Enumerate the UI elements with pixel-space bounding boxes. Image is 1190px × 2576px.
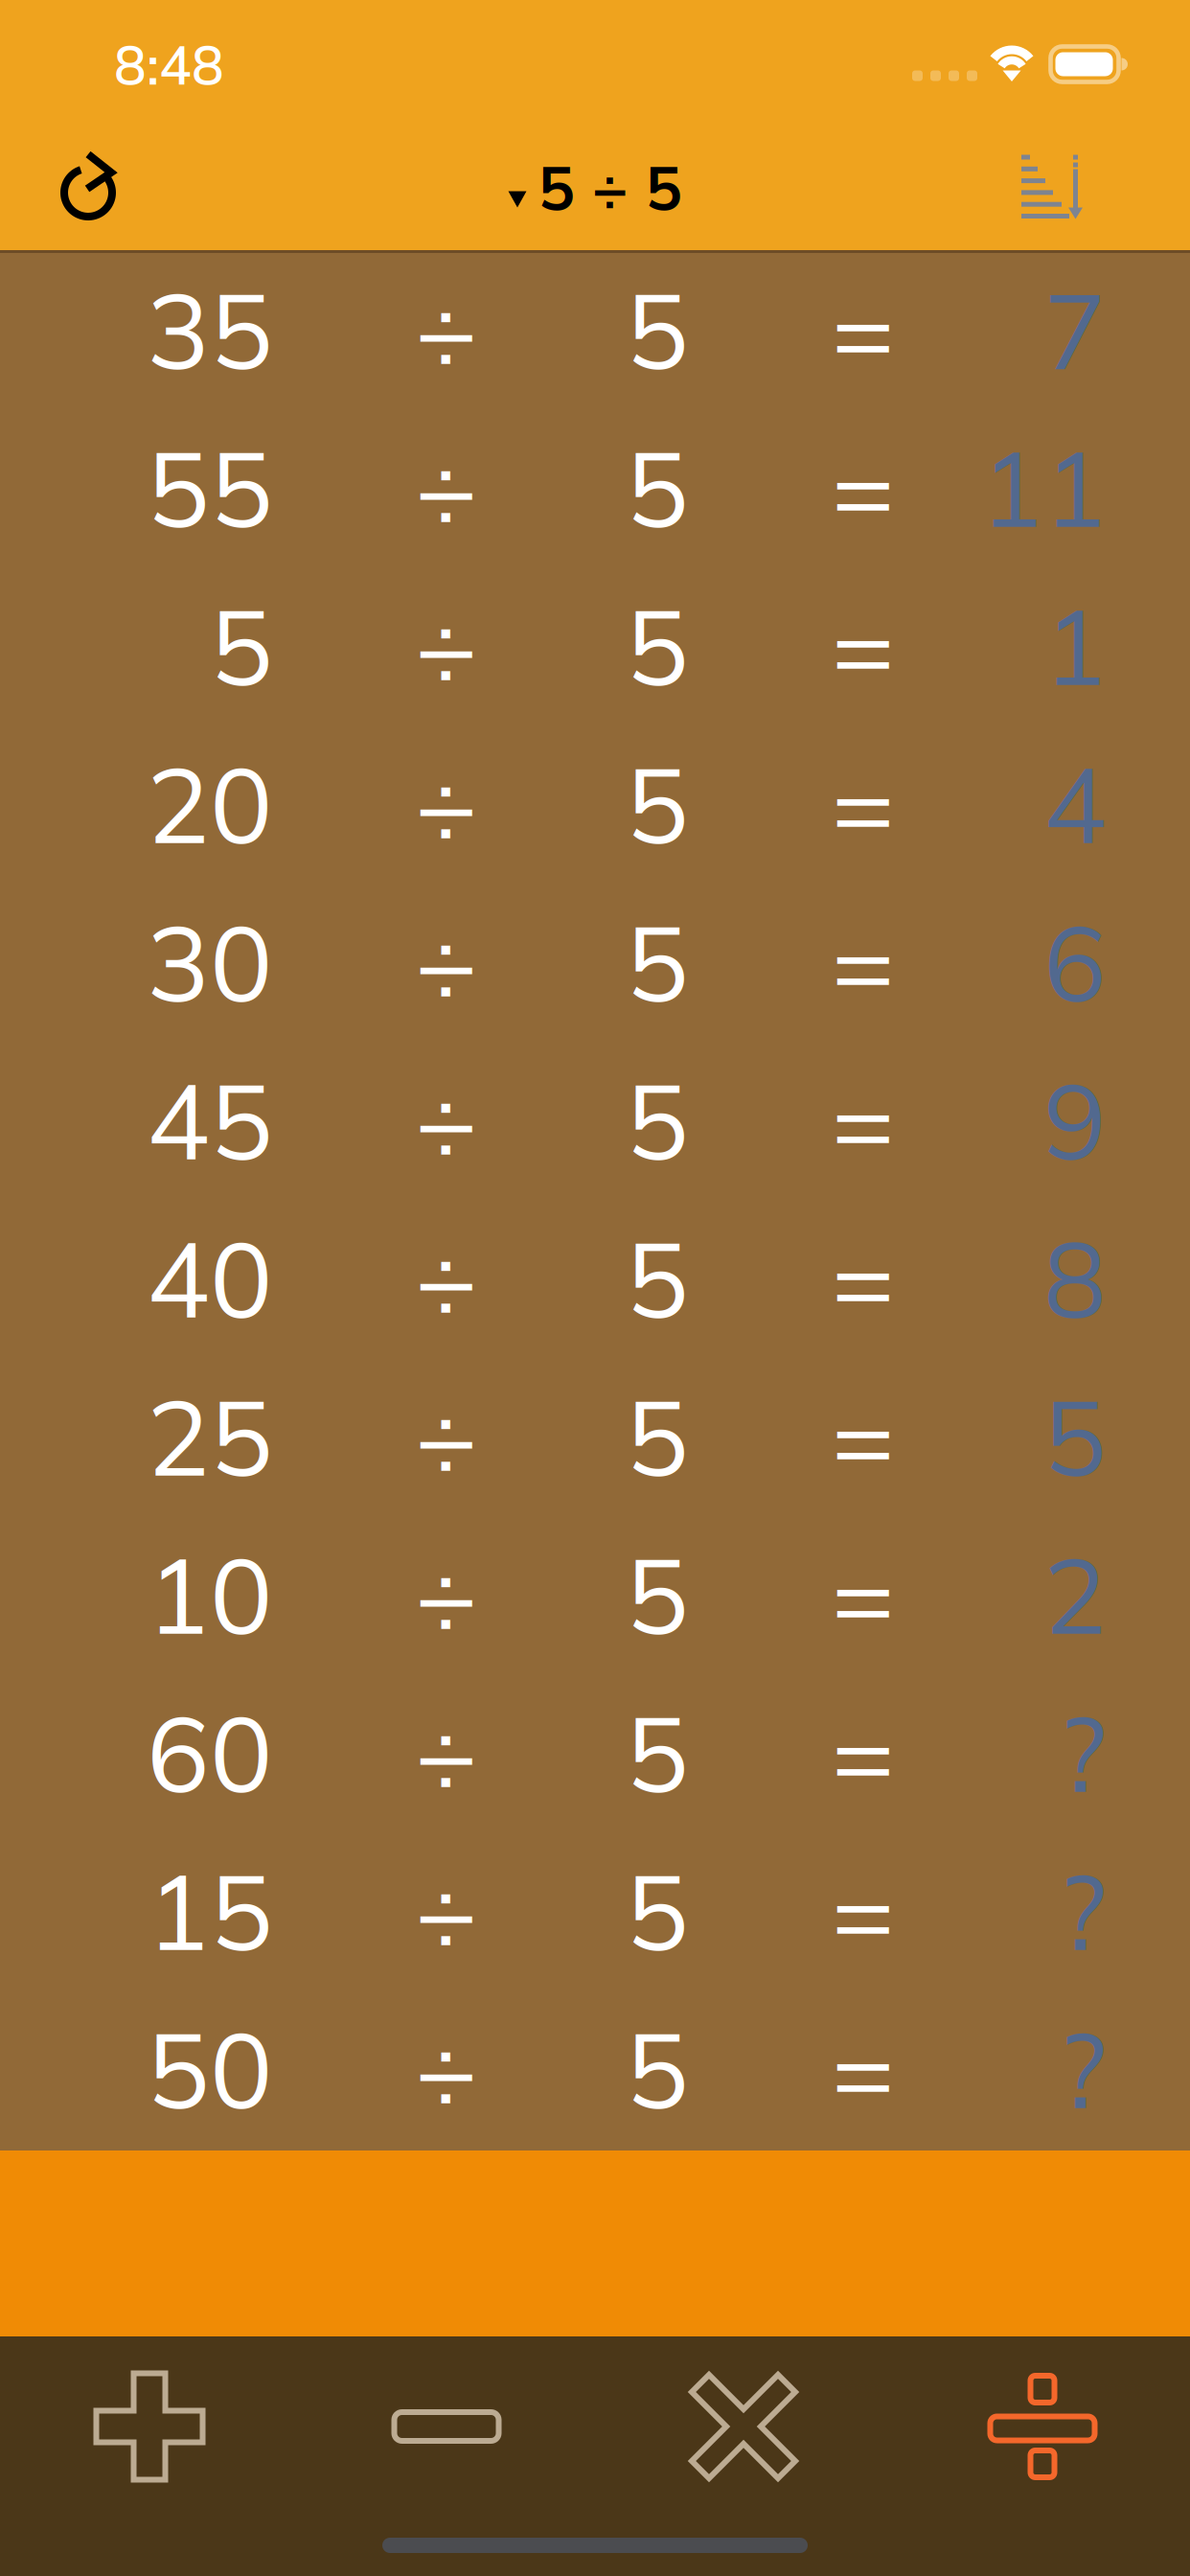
staticText: 5 (626, 1845, 689, 1976)
staticText: ÷ (415, 422, 478, 553)
staticText: = (832, 422, 895, 553)
staticText: 8:48 (114, 31, 224, 98)
staticText: ? (1060, 1845, 1107, 1976)
staticText: 5 (626, 1212, 689, 1344)
staticText: = (832, 738, 895, 869)
staticText: 25 (147, 1370, 273, 1502)
staticText: ? (1060, 1687, 1107, 1818)
staticText: 5 (626, 2003, 689, 2134)
staticText: = (832, 1054, 895, 1186)
button[interactable]: Division (908, 2340, 1177, 2513)
button[interactable]: Addition (15, 2340, 284, 2513)
staticText: ÷ (415, 1845, 478, 1976)
staticText: 5 (626, 1687, 689, 1818)
staticText: 5 (626, 1370, 689, 1502)
button[interactable]: Sort order (995, 124, 1110, 250)
button[interactable]: Multiplication (609, 2340, 878, 2513)
staticText: 1 (1043, 580, 1107, 711)
staticText: 35 (147, 263, 273, 395)
staticText: 20 (147, 738, 273, 869)
staticText: 50 (147, 2003, 273, 2134)
staticText: 5 (626, 1528, 689, 1660)
button[interactable]: Subtraction (312, 2340, 581, 2513)
button[interactable]: 5 ÷ 5 (423, 124, 767, 250)
staticText: 55 (147, 422, 273, 553)
staticText: ÷ (415, 738, 478, 869)
staticText: = (832, 263, 895, 395)
staticText: 5 (626, 738, 689, 869)
staticText: 10 (147, 1528, 273, 1660)
staticText: 5 (626, 896, 689, 1027)
staticText: = (832, 1845, 895, 1976)
staticText: = (832, 1528, 895, 1660)
staticText: ÷ (415, 580, 478, 711)
staticText: 30 (147, 896, 273, 1027)
staticText: ÷ (415, 263, 478, 395)
staticText: 7 (1043, 263, 1107, 395)
staticText: 5 (626, 263, 689, 395)
staticText: = (832, 2003, 895, 2134)
staticText: 5 (626, 422, 689, 553)
staticText: 5 (626, 580, 689, 711)
staticText: 11 (980, 422, 1107, 553)
staticText: = (832, 896, 895, 1027)
staticText: = (832, 580, 895, 711)
staticText: 45 (147, 1054, 273, 1186)
staticText: 5 ÷ 5 (538, 148, 682, 225)
staticText: ? (1060, 2003, 1107, 2134)
staticText: ÷ (415, 1054, 478, 1186)
staticText: ÷ (415, 1212, 478, 1344)
staticText: 2 (1043, 1528, 1107, 1660)
staticText: = (832, 1212, 895, 1344)
staticText: ÷ (415, 2003, 478, 2134)
staticText: ÷ (415, 1687, 478, 1818)
staticText: 6 (1043, 896, 1107, 1027)
staticText: 5 (626, 1054, 689, 1186)
staticText: ÷ (415, 896, 478, 1027)
staticText: ÷ (415, 1528, 478, 1660)
button[interactable]: Restart (26, 123, 152, 249)
staticText: = (832, 1370, 895, 1502)
staticText: 40 (147, 1212, 273, 1344)
staticText: = (832, 1687, 895, 1818)
staticText: 9 (1043, 1054, 1107, 1186)
staticText: 4 (1043, 738, 1107, 869)
staticText: 5 (1043, 1370, 1107, 1502)
staticText: 60 (147, 1687, 273, 1818)
staticText: 5 (210, 580, 273, 711)
staticText: 8 (1043, 1212, 1107, 1344)
staticText: 15 (147, 1845, 273, 1976)
staticText: ÷ (415, 1370, 478, 1502)
